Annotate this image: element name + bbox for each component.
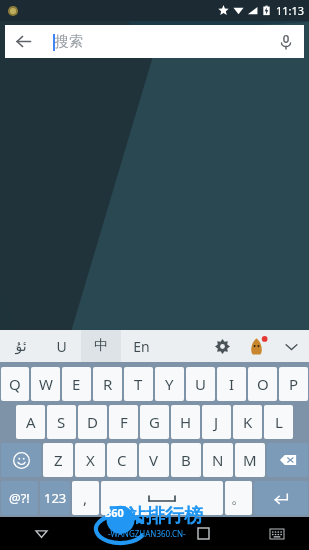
button[interactable]: Switch input method <box>244 517 309 550</box>
button[interactable]: U <box>186 367 215 401</box>
button[interactable]: G <box>140 405 169 439</box>
staticText: -WANGZHAN360.CN- <box>108 528 186 539</box>
button[interactable]: 中 <box>81 330 121 362</box>
staticText: 搜索 <box>55 33 83 51</box>
staticText: R <box>103 374 113 394</box>
staticText: S <box>57 412 66 432</box>
staticText: Y <box>165 374 174 394</box>
staticText: A <box>26 412 36 432</box>
button[interactable]: Collapse keyboard <box>273 330 309 362</box>
staticText: B <box>181 450 191 470</box>
button[interactable]: 。 <box>225 481 252 515</box>
button[interactable]: Y <box>155 367 184 401</box>
staticText: O <box>257 374 269 394</box>
button[interactable]: T <box>124 367 153 401</box>
staticText: 网站排行榜 <box>108 504 203 528</box>
button[interactable]: Settings <box>205 330 239 362</box>
button[interactable]: V <box>139 443 169 477</box>
staticText: H <box>180 412 192 432</box>
staticText: J <box>214 412 219 432</box>
button[interactable]: C <box>107 443 137 477</box>
button[interactable]: ئۇ <box>0 330 41 362</box>
button[interactable]: D <box>78 405 107 439</box>
button[interactable]: Z <box>43 443 73 477</box>
staticText: G <box>149 412 160 432</box>
button[interactable]: Emoji <box>1 443 41 477</box>
staticText: , <box>83 488 88 508</box>
staticText: 11:13 <box>276 3 305 18</box>
button[interactable]: 123 <box>40 481 70 515</box>
button[interactable]: Home <box>82 517 163 550</box>
button[interactable]: , <box>72 481 99 515</box>
staticText: ئۇ <box>15 338 27 354</box>
button[interactable]: E <box>62 367 91 401</box>
button[interactable]: A <box>16 405 45 439</box>
button[interactable]: B <box>171 443 201 477</box>
staticText: U <box>56 337 67 356</box>
staticText: E <box>72 374 81 394</box>
button[interactable]: Back <box>5 25 41 58</box>
staticText: 360 <box>105 505 124 520</box>
staticText: L <box>275 412 283 432</box>
staticText: C <box>117 450 127 470</box>
staticText: N <box>212 450 224 470</box>
staticText: P <box>289 374 299 394</box>
staticText: I <box>229 374 235 394</box>
button[interactable]: @?! <box>1 481 38 515</box>
button[interactable]: Space <box>101 481 223 515</box>
staticText: D <box>87 412 98 432</box>
staticText: K <box>243 412 253 432</box>
button[interactable]: Q <box>1 367 29 401</box>
button[interactable]: Recents <box>163 517 244 550</box>
button[interactable]: L <box>264 405 293 439</box>
staticText: 。 <box>231 489 246 508</box>
staticText: Z <box>54 450 63 470</box>
button[interactable]: H <box>171 405 200 439</box>
button[interactable]: Back <box>5 25 304 58</box>
button[interactable]: K <box>233 405 262 439</box>
button[interactable]: S <box>47 405 76 439</box>
staticText: F <box>120 412 128 432</box>
staticText: W <box>39 374 53 394</box>
staticText: @?! <box>9 489 30 507</box>
button[interactable]: P <box>279 367 308 401</box>
button[interactable]: M <box>235 443 265 477</box>
button[interactable]: Voice search <box>268 25 304 58</box>
button[interactable]: Backspace <box>267 443 308 477</box>
staticText: X <box>86 450 95 470</box>
staticText: T <box>134 374 143 394</box>
staticText: V <box>149 450 159 470</box>
button[interactable]: J <box>202 405 231 439</box>
button[interactable]: Enter <box>254 481 308 515</box>
button[interactable]: X <box>75 443 105 477</box>
button[interactable]: N <box>203 443 233 477</box>
staticText: U <box>195 374 206 394</box>
button[interactable]: Emoji sticker <box>239 330 273 362</box>
button[interactable]: U <box>41 330 81 362</box>
button[interactable]: R <box>93 367 122 401</box>
staticText: Q <box>9 374 21 394</box>
button[interactable]: I <box>217 367 246 401</box>
button[interactable]: F <box>109 405 138 439</box>
staticText: M <box>243 450 257 470</box>
button[interactable]: En <box>121 330 161 362</box>
button[interactable]: Hide keyboard <box>0 517 82 550</box>
staticText: 中 <box>94 337 108 355</box>
button[interactable]: W <box>31 367 60 401</box>
staticText: En <box>133 337 150 356</box>
button[interactable]: O <box>248 367 277 401</box>
staticText: 123 <box>44 489 67 507</box>
